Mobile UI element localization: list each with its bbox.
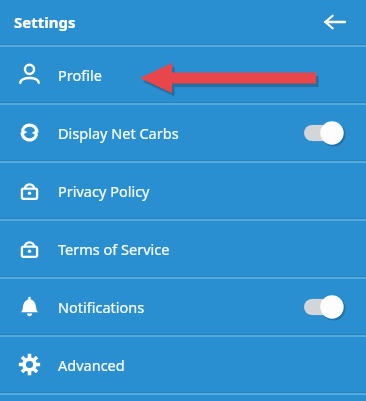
- button[interactable]: Back: [316, 3, 354, 41]
- staticText: Settings: [14, 12, 76, 32]
- staticText: Display Net Carbs: [58, 123, 179, 143]
- button[interactable]: Notifications toggle: [304, 294, 352, 320]
- button[interactable]: Terms of Service: [0, 221, 366, 276]
- button[interactable]: Display Net Carbs: [0, 105, 366, 160]
- button[interactable]: Notifications: [0, 279, 366, 334]
- staticText: Advanced: [58, 355, 125, 375]
- staticText: Terms of Service: [58, 239, 170, 259]
- staticText: Profile: [58, 65, 102, 85]
- staticText: Privacy Policy: [58, 181, 150, 201]
- staticText: Notifications: [58, 297, 145, 317]
- button[interactable]: Display Net Carbs toggle: [304, 120, 352, 146]
- button[interactable]: Advanced: [0, 337, 366, 392]
- button[interactable]: Privacy Policy: [0, 163, 366, 218]
- button[interactable]: Profile: [0, 47, 366, 102]
